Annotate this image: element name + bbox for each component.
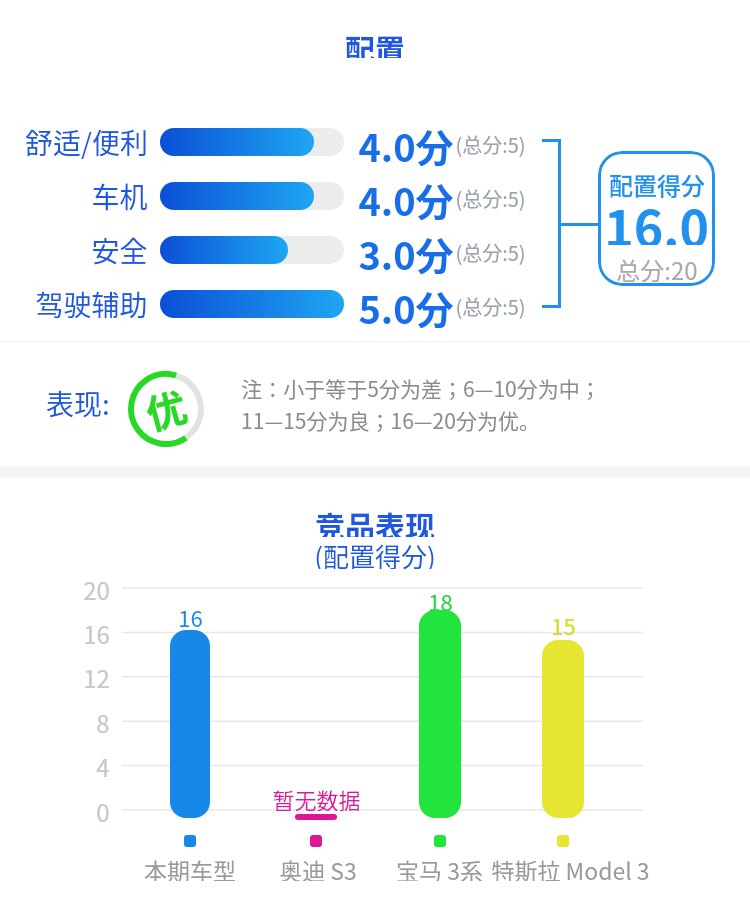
staticText: 0 <box>96 794 110 826</box>
staticText: (总分:5) <box>455 292 526 321</box>
staticText: 18 <box>428 585 453 613</box>
staticText: 3.0分 <box>358 226 454 274</box>
staticText: (总分:5) <box>455 184 526 213</box>
staticText: 4.0分 <box>358 118 454 166</box>
staticText: 竞品表现 <box>315 503 435 537</box>
staticText: 车机 <box>91 176 148 216</box>
staticText: 安全 <box>91 230 148 270</box>
staticText: 8 <box>96 705 110 737</box>
staticText: 特斯拉 Model 3 <box>491 853 650 881</box>
staticText: 本期车型 <box>144 853 236 881</box>
button[interactable]: 奥迪 S3 <box>228 853 408 881</box>
staticText: (总分:5) <box>455 130 526 159</box>
staticText: 优 <box>139 376 193 442</box>
staticText: 配置得分 <box>609 167 705 199</box>
staticText: 暂无数据 <box>272 783 361 811</box>
staticText: 4.0分 <box>358 172 454 220</box>
button[interactable]: 特斯拉 Model 3 <box>480 853 660 881</box>
staticText: 宝马 3系 <box>396 853 483 881</box>
staticText: 总分:20 <box>616 252 698 282</box>
button[interactable]: 本期车型 <box>100 853 280 881</box>
staticText: 驾驶辅助 <box>35 284 148 324</box>
staticText: 注：小于等于5分为差；6—10分为中； <box>241 373 601 403</box>
staticText: 奥迪 S3 <box>279 853 357 881</box>
staticText: 16 <box>83 616 110 648</box>
staticText: 15 <box>551 609 576 637</box>
button[interactable] <box>598 151 715 286</box>
staticText: (总分:5) <box>455 238 526 267</box>
staticText: (配置得分) <box>314 537 436 569</box>
staticText: 16.0 <box>604 189 709 245</box>
staticText: 表现: <box>46 383 110 423</box>
staticText: 5.0分 <box>358 280 454 328</box>
button[interactable]: 宝马 3系 <box>349 853 529 881</box>
staticText: 配置 <box>345 26 405 58</box>
staticText: 舒适/便利 <box>25 122 148 162</box>
staticText: 4 <box>96 749 110 781</box>
staticText: 20 <box>83 572 110 604</box>
staticText: 12 <box>83 660 110 692</box>
staticText: 16 <box>178 601 203 629</box>
staticText: 11—15分为良；16—20分为优。 <box>241 405 540 435</box>
